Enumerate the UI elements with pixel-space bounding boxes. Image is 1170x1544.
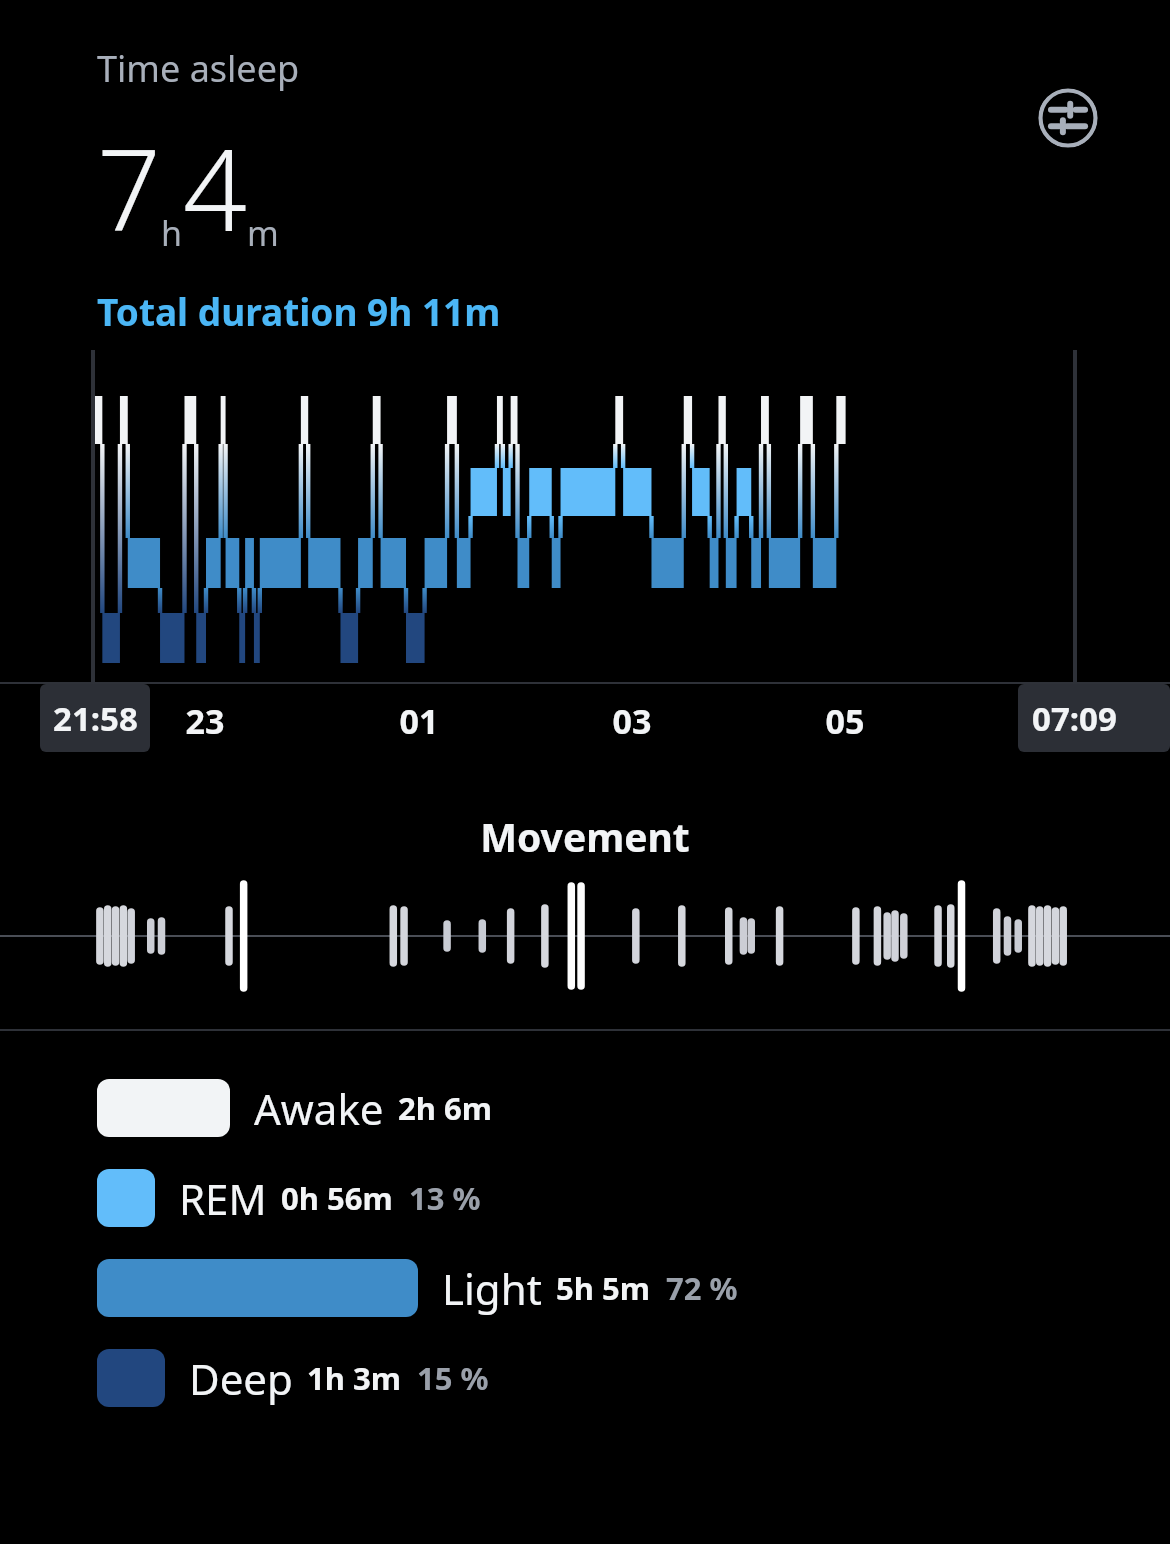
staticText: 05 bbox=[805, 698, 885, 744]
staticText: 13 % bbox=[409, 1177, 481, 1219]
staticText: 15 % bbox=[417, 1357, 489, 1399]
button[interactable]: REM bbox=[0, 1167, 1170, 1229]
staticText: Time asleep bbox=[97, 44, 300, 93]
staticText: 1h 3m bbox=[307, 1357, 401, 1399]
staticText: REM bbox=[179, 1170, 267, 1227]
staticText: Total duration 9h 11m bbox=[97, 286, 501, 336]
staticText: 0h 56m bbox=[281, 1177, 393, 1219]
staticText: m bbox=[247, 210, 279, 256]
staticText: 23 bbox=[165, 698, 245, 744]
staticText: Deep bbox=[189, 1350, 293, 1407]
button[interactable]: Adjust sleep settings bbox=[1038, 88, 1098, 148]
staticText: 7 bbox=[97, 111, 161, 264]
staticText: 01 bbox=[379, 698, 459, 744]
button[interactable]: Awake bbox=[0, 1077, 1170, 1139]
staticText: 21:58 bbox=[53, 696, 138, 741]
staticText: Movement bbox=[0, 810, 1170, 863]
staticText: h bbox=[161, 210, 183, 256]
staticText: 07:09 bbox=[1032, 696, 1117, 741]
staticText: 03 bbox=[592, 698, 672, 744]
staticText: Awake bbox=[254, 1080, 384, 1137]
staticText: 2h 6m bbox=[398, 1087, 492, 1129]
button[interactable]: Deep bbox=[0, 1347, 1170, 1409]
staticText: 5h 5m bbox=[556, 1267, 650, 1309]
staticText: 72 % bbox=[666, 1267, 738, 1309]
staticText: 4 bbox=[183, 111, 247, 264]
staticText: Light bbox=[442, 1260, 542, 1317]
button[interactable]: Light bbox=[0, 1257, 1170, 1319]
